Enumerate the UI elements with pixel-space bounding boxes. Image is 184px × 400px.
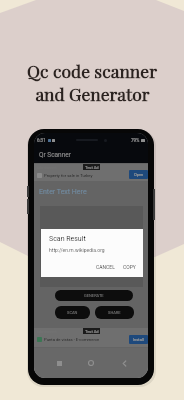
button[interactable]: GENERATE xyxy=(55,290,133,301)
staticText: Qc code scanner xyxy=(27,59,157,82)
button[interactable]: Home xyxy=(83,355,99,371)
staticText: and Generator xyxy=(35,82,150,105)
button[interactable]: COPY xyxy=(121,262,138,272)
staticText: SHARE xyxy=(108,310,121,315)
staticText: Punta de vistas - E-commerce xyxy=(44,337,100,342)
button[interactable]: Install xyxy=(129,335,148,344)
staticText: Scan Result xyxy=(49,235,86,243)
staticText: Qr Scanner xyxy=(39,151,71,159)
staticText: 79% xyxy=(131,138,140,143)
staticText: GENERATE xyxy=(84,293,104,298)
button[interactable]: SHARE xyxy=(95,306,134,319)
staticText: SCAN xyxy=(67,310,78,315)
staticText: http://en.m.wikipedia.org xyxy=(49,247,105,253)
button[interactable]: SCAN xyxy=(55,306,90,319)
staticText: COPY xyxy=(123,264,136,270)
button[interactable]: CANCEL xyxy=(94,262,117,272)
staticText: Test Ad xyxy=(85,329,99,334)
staticText: Open xyxy=(134,172,144,177)
staticText: Install xyxy=(133,337,144,342)
staticText: 6:31 xyxy=(37,138,46,143)
staticText: Enter Text Here xyxy=(39,188,87,196)
button[interactable]: Recents xyxy=(51,355,67,371)
button[interactable]: Back xyxy=(116,355,132,371)
button[interactable]: Open xyxy=(129,170,148,179)
staticText: Property for sale in Turkey xyxy=(44,173,93,178)
staticText: CANCEL xyxy=(96,264,115,270)
staticText: Test Ad xyxy=(85,165,99,170)
